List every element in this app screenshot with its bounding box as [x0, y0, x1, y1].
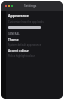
staticText: Accent colour [8, 49, 29, 53]
staticText: Settings [24, 4, 37, 8]
staticText: GENERAL [8, 32, 20, 36]
staticText: Pick a highlight colour [8, 54, 36, 58]
staticText: Theme [8, 38, 19, 42]
staticText: Appearance [8, 13, 29, 18]
staticText: System default appearance [8, 43, 42, 47]
staticText: Customize how the app looks [8, 20, 44, 24]
